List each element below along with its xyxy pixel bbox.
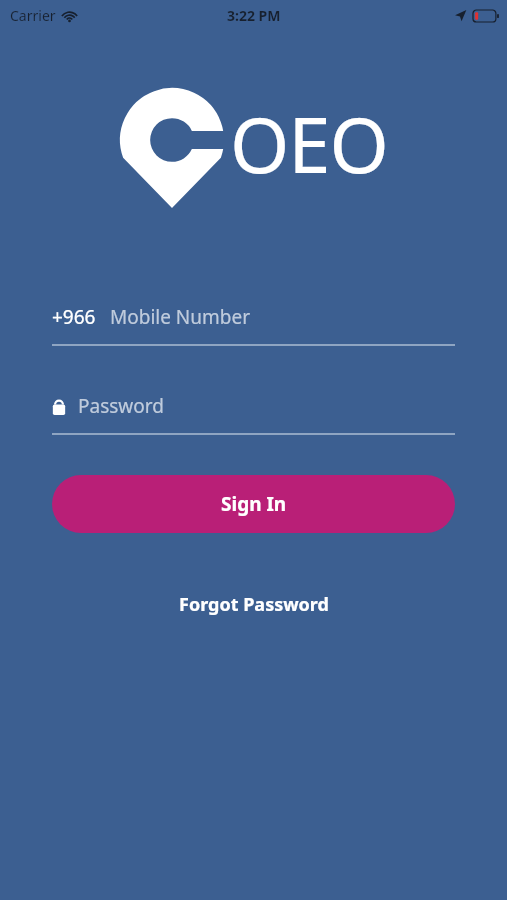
button[interactable]: Password [52,389,455,423]
staticText: +966 [52,304,96,330]
staticText: Carrier [10,6,56,25]
staticText: 3:22 PM [227,6,281,25]
button[interactable]: +966 [52,300,455,334]
staticText: Mobile Number [110,304,251,330]
staticText: OEO [230,92,388,196]
staticText: Forgot Password [179,592,329,617]
button[interactable]: Forgot Password [169,588,339,621]
button[interactable]: Sign In [52,475,455,533]
staticText: Sign In [221,491,287,517]
staticText: Password [78,393,164,419]
